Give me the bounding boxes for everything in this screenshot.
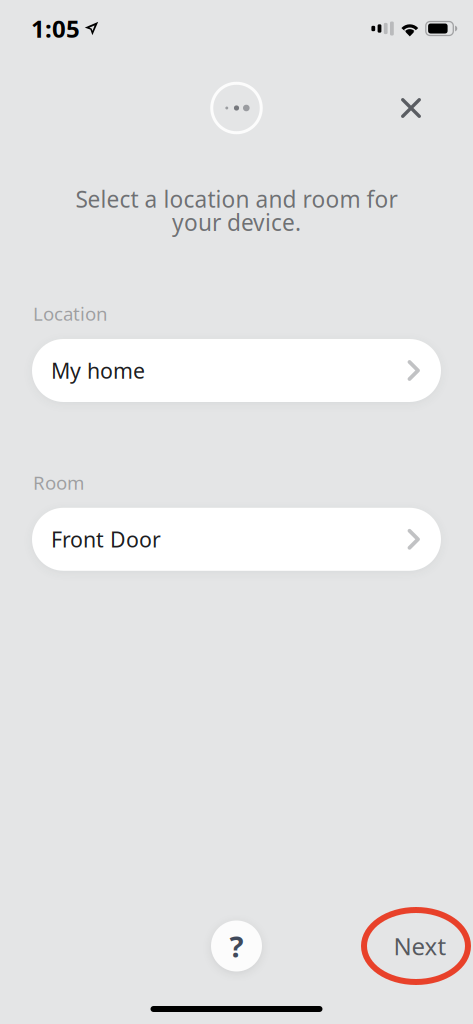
staticText: Select a location and room for [75,184,397,214]
staticText: 1:05 [31,13,80,44]
staticText: Next [393,930,446,962]
button[interactable]: Help [206,916,266,976]
button[interactable]: Close [390,87,432,129]
button[interactable]: My home [32,339,441,402]
button[interactable]: Front Door [32,508,441,571]
staticText: My home [51,356,145,385]
button[interactable]: Next [361,907,471,985]
staticText: Location [33,301,108,326]
staticText: Room [33,470,84,495]
staticText: your device. [172,207,301,237]
staticText: ? [229,926,243,965]
staticText: Front Door [51,525,161,553]
